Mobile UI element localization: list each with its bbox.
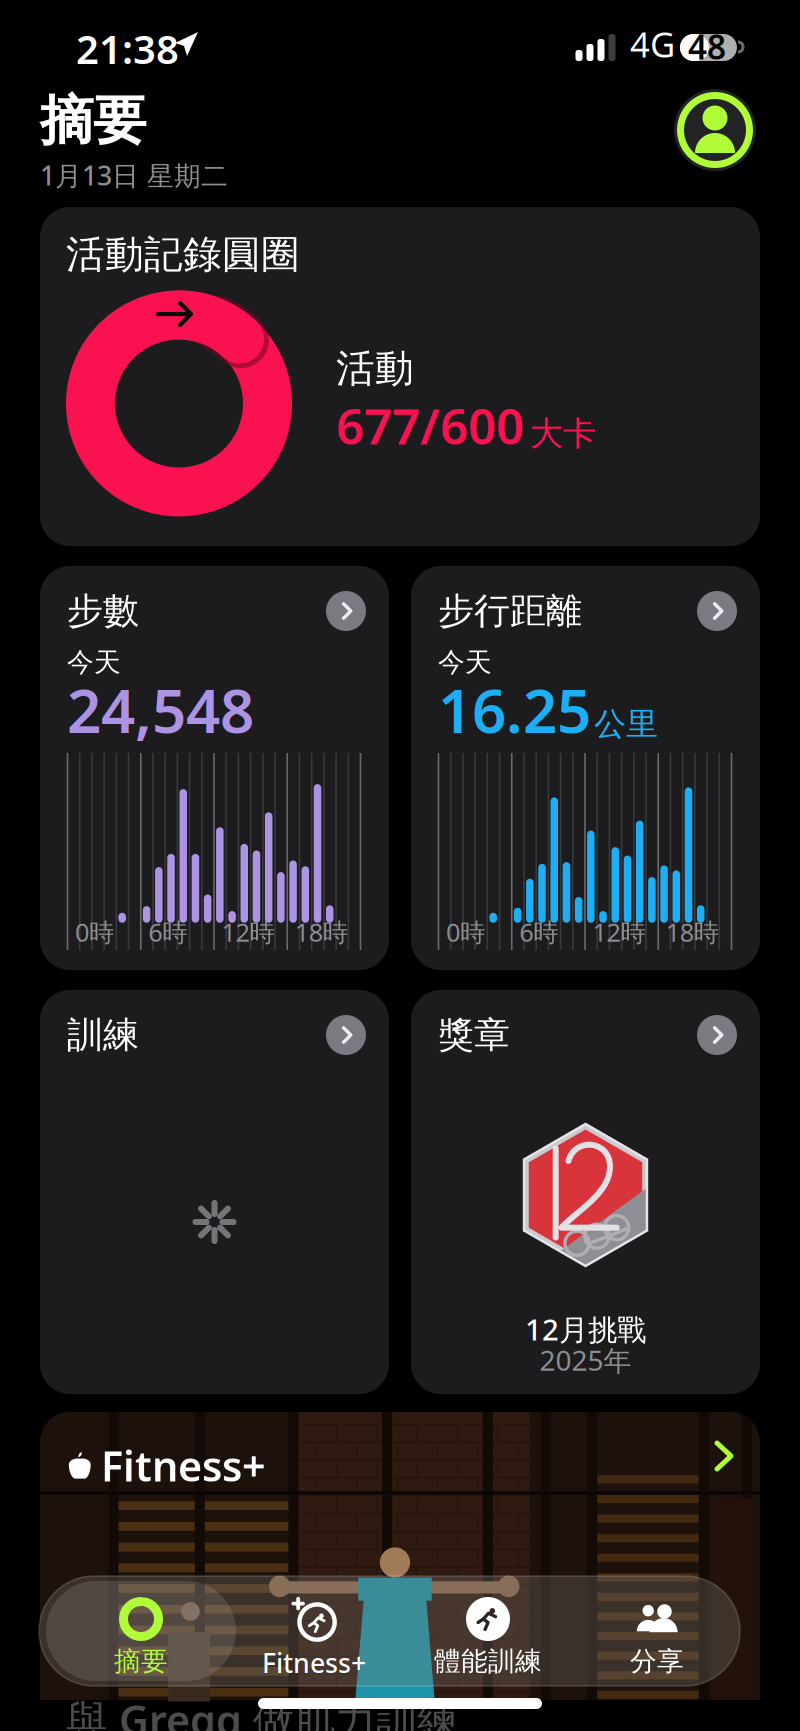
button[interactable]: Profile [674,88,756,170]
staticText: 12時 [592,915,645,949]
staticText: Fitness+ [262,1645,366,1680]
staticText: 18時 [295,915,348,949]
button[interactable]: 步行距離 [411,566,760,970]
staticText: 48 [688,24,726,69]
staticText: 12月挑戰 [525,1309,646,1348]
staticText: 6時 [519,915,558,949]
staticText: 大卡 [530,413,596,454]
staticText: 今天 [438,646,492,679]
staticText: 與 Gregg 做肌力訓練 [66,1692,458,1731]
button[interactable]: 步數 [40,566,389,970]
staticText: 獎章 [438,1013,510,1057]
staticText: 0時 [446,915,485,949]
button[interactable]: 分享 [572,1576,742,1686]
staticText: 體能訓練 [434,1645,542,1678]
staticText: 步行距離 [438,589,582,633]
staticText: 21:38 [76,22,179,75]
staticText: 18時 [666,915,719,949]
staticText: 6時 [148,915,187,949]
button[interactable]: 體能訓練 [403,1576,573,1686]
staticText: 分享 [630,1645,684,1678]
staticText: 24,548 [67,670,254,750]
button[interactable]: Fitness+ [229,1576,399,1686]
staticText: 今天 [67,646,121,679]
staticText: 0時 [75,915,114,949]
staticText: 活動 [336,345,414,392]
staticText: 16.25 [438,670,591,750]
staticText: Fitness+ [101,1438,266,1493]
staticText: 摘要 [114,1645,168,1678]
button[interactable]: 摘要 [56,1576,226,1686]
staticText: 摘要 [40,88,146,153]
staticText: 訓練 [67,1013,139,1057]
button[interactable]: Fitness+ [40,1412,760,1731]
button[interactable]: 訓練 [40,990,389,1394]
staticText: 步數 [67,589,139,633]
staticText: 2025年 [539,1341,631,1379]
staticText: 677/600 [336,392,524,458]
button[interactable]: 獎章 [411,990,760,1394]
staticText: 1月13日 星期二 [40,157,228,193]
button[interactable]: 活動記錄圓圈 [40,207,760,546]
staticText: 公里 [594,704,658,744]
staticText: 4G [630,21,675,67]
staticText: 12時 [221,915,274,949]
staticText: 活動記錄圓圈 [66,231,300,278]
